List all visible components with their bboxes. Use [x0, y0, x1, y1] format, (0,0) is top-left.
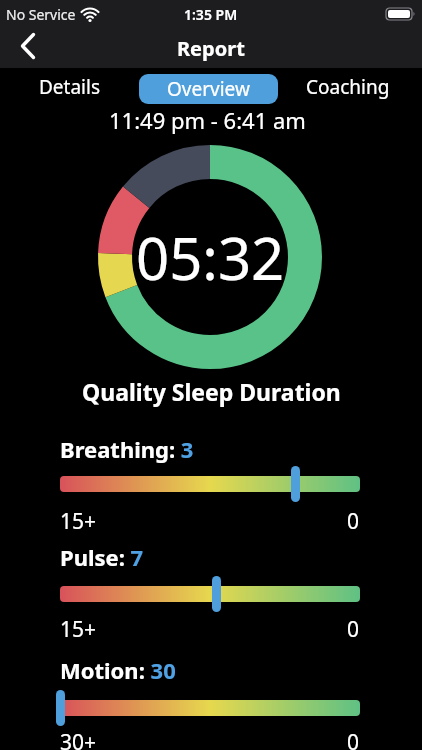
staticText: 0: [347, 728, 360, 750]
staticText: Quality Sleep Duration: [82, 376, 341, 407]
staticText: 0: [347, 507, 360, 531]
staticText: Report: [177, 35, 245, 62]
button[interactable]: [12, 30, 44, 62]
staticText: 15+: [60, 615, 97, 639]
staticText: Pulse: 7: [60, 542, 144, 572]
staticText: Breathing: 3: [60, 434, 194, 464]
staticText: 30+: [60, 728, 97, 750]
staticText: 11:49 pm - 6:41 am: [109, 105, 306, 135]
staticText: Overview: [167, 76, 250, 102]
button[interactable]: Overview: [139, 74, 278, 104]
button[interactable]: Coaching: [278, 68, 417, 106]
button[interactable]: [60, 466, 360, 502]
button[interactable]: [60, 576, 360, 612]
button[interactable]: Details: [0, 68, 139, 106]
button[interactable]: [60, 690, 360, 726]
staticText: Coaching: [306, 74, 390, 100]
staticText: 1:35 PM: [184, 5, 238, 24]
staticText: Motion: 30: [60, 655, 176, 685]
staticText: Details: [39, 74, 101, 100]
staticText: 05:32: [136, 218, 285, 297]
staticText: 15+: [60, 507, 97, 531]
staticText: 0: [347, 615, 360, 639]
staticText: No Service: [6, 5, 76, 24]
